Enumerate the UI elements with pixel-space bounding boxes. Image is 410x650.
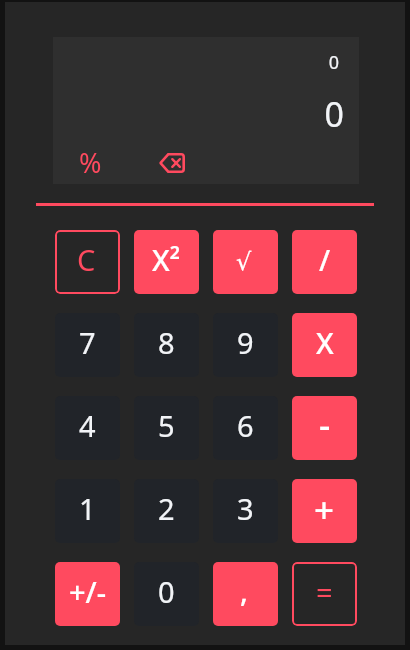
staticText: + — [314, 486, 335, 534]
button[interactable]: X² — [134, 230, 199, 294]
button[interactable]: +/- — [55, 562, 120, 626]
staticText: √ — [236, 248, 252, 276]
staticText: % — [79, 144, 102, 176]
staticText: 0 — [53, 91, 344, 137]
staticText: 6 — [237, 406, 254, 445]
button[interactable]: Backspace — [154, 147, 190, 179]
button[interactable]: - — [292, 396, 357, 460]
button[interactable]: 6 — [213, 396, 278, 460]
staticText: C — [77, 240, 96, 279]
staticText: X² — [152, 240, 181, 279]
staticText: , — [240, 571, 248, 610]
staticText: 7 — [79, 323, 96, 362]
staticText: 8 — [158, 323, 175, 362]
button[interactable]: + — [292, 479, 357, 543]
button[interactable]: 0 — [134, 562, 199, 626]
button[interactable]: 7 — [55, 313, 120, 377]
staticText: 3 — [237, 489, 254, 528]
button[interactable]: 5 — [134, 396, 199, 460]
button[interactable]: X — [292, 313, 357, 377]
staticText: 0 — [158, 572, 175, 611]
staticText: 1 — [79, 489, 96, 528]
button[interactable]: 1 — [55, 479, 120, 543]
staticText: - — [319, 401, 331, 449]
button[interactable]: 4 — [55, 396, 120, 460]
button[interactable]: = — [292, 562, 357, 626]
staticText: 5 — [158, 406, 175, 445]
staticText: 2 — [158, 489, 175, 528]
staticText: 0 — [53, 50, 339, 75]
staticText: 9 — [237, 323, 254, 362]
staticText: = — [316, 572, 333, 611]
button[interactable]: C — [55, 230, 120, 294]
button[interactable]: 9 — [213, 313, 278, 377]
staticText: +/- — [69, 572, 107, 611]
staticText: / — [319, 240, 331, 279]
button[interactable]: , — [213, 562, 278, 626]
button[interactable]: 3 — [213, 479, 278, 543]
button[interactable]: / — [292, 230, 357, 294]
button[interactable]: 8 — [134, 313, 199, 377]
button[interactable]: 2 — [134, 479, 199, 543]
button[interactable]: √ — [213, 230, 278, 294]
staticText: X — [316, 323, 334, 362]
button[interactable]: % — [72, 144, 108, 176]
staticText: 4 — [79, 406, 96, 445]
